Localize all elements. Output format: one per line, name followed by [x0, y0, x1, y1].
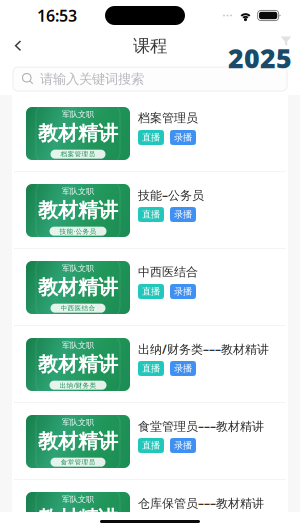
button[interactable]: Filter 2025	[212, 35, 292, 68]
button[interactable]: 军队文职	[12, 95, 288, 172]
staticText: 直播	[142, 132, 160, 143]
button[interactable]: 录播	[170, 438, 196, 453]
staticText: 请输入关键词搜索	[40, 71, 144, 87]
button[interactable]: 请输入关键词搜索	[13, 67, 287, 91]
staticText: 军队文职	[62, 109, 94, 119]
button[interactable]: 直播	[138, 130, 164, 145]
staticText: 直播	[142, 209, 160, 220]
button[interactable]: 录播	[170, 515, 196, 530]
button[interactable]: 录播	[170, 361, 196, 376]
staticText: 直播	[142, 286, 160, 297]
staticText: 教材精讲	[38, 275, 118, 300]
button[interactable]: 录播	[170, 284, 196, 299]
staticText: 军队文职	[62, 263, 94, 273]
staticText: 教材精讲	[38, 352, 118, 377]
staticText: 教材精讲	[38, 198, 118, 223]
button[interactable]: 军队文职	[12, 403, 288, 480]
staticText: 食堂管理员–––教材精讲	[138, 418, 264, 434]
staticText: 直播	[142, 363, 160, 374]
staticText: 直播	[142, 517, 160, 528]
button[interactable]: 直播	[138, 438, 164, 453]
button[interactable]: 军队文职	[12, 480, 288, 530]
staticText: 食堂管理员	[60, 458, 95, 466]
staticText: 档案管理员	[60, 150, 95, 158]
button[interactable]: 直播	[138, 284, 164, 299]
staticText: 16:53	[37, 5, 77, 26]
staticText: 军队文职	[62, 186, 94, 196]
staticText: 仓库保管员–––教材精讲	[138, 495, 264, 511]
button[interactable]: Back	[0, 31, 34, 60]
staticText: 录播	[174, 517, 192, 528]
staticText: 中西医结合	[60, 304, 95, 312]
staticText: 军队文职	[62, 340, 94, 350]
staticText: 出纳/财务类–––教材精讲	[138, 341, 269, 357]
staticText: 录播	[174, 363, 192, 374]
staticText: 军队文职	[62, 417, 94, 427]
staticText: 技能–公务员	[138, 187, 204, 203]
staticText: 录播	[174, 440, 192, 451]
button[interactable]: 直播	[138, 515, 164, 530]
staticText: 课程	[133, 35, 167, 57]
button[interactable]: 直播	[138, 361, 164, 376]
staticText: 档案管理员	[138, 111, 198, 125]
staticText: 2025	[228, 40, 292, 76]
button[interactable]: 军队文职	[12, 172, 288, 249]
staticText: 教材精讲	[38, 506, 118, 530]
button[interactable]: 录播	[170, 130, 196, 145]
staticText: 录播	[174, 286, 192, 297]
staticText: 直播	[142, 440, 160, 451]
button[interactable]: 录播	[170, 207, 196, 222]
button[interactable]: 军队文职	[12, 326, 288, 403]
staticText: 中西医结合	[138, 265, 198, 279]
button[interactable]: 直播	[138, 207, 164, 222]
staticText: 出纳/财务类	[59, 381, 96, 390]
staticText: 军队文职	[62, 494, 94, 504]
staticText: 技能·公务员	[59, 227, 96, 236]
staticText: 录播	[174, 132, 192, 143]
staticText: 教材精讲	[38, 429, 118, 454]
button[interactable]: 军队文职	[12, 249, 288, 326]
staticText: 录播	[174, 209, 192, 220]
staticText: 教材精讲	[38, 121, 118, 146]
